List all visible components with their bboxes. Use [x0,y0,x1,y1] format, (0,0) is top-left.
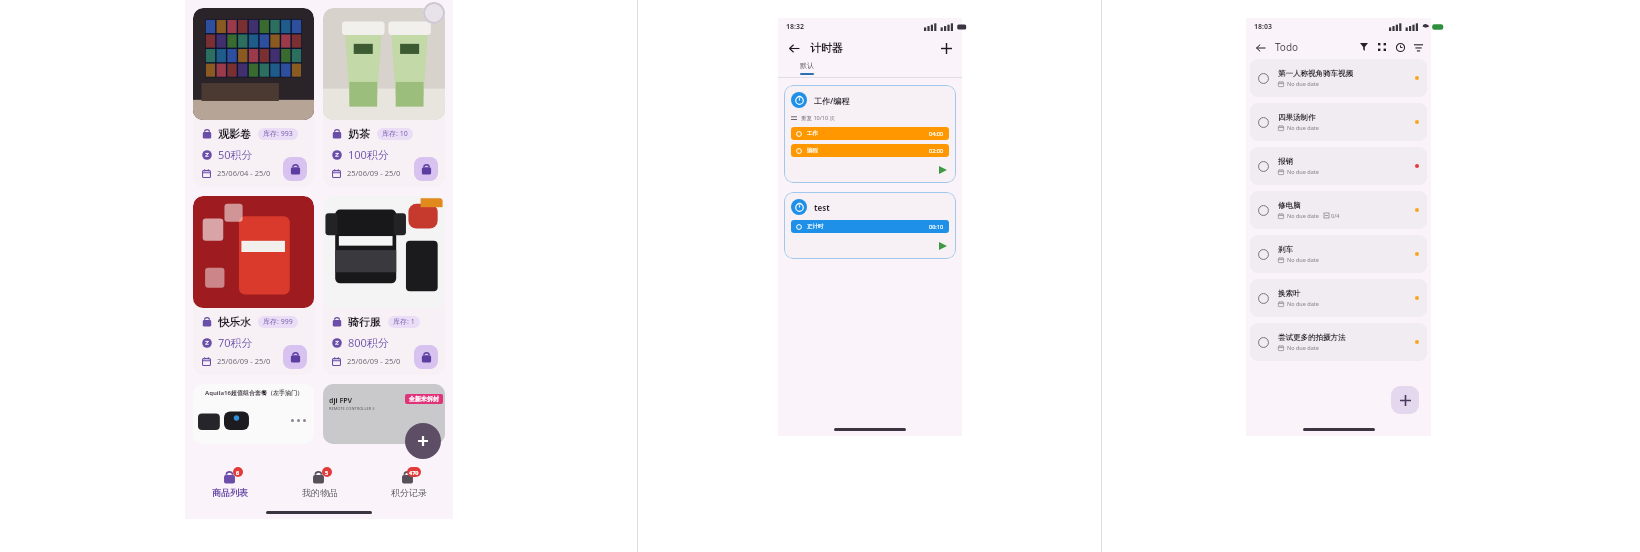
staticText: No due date [1287,168,1319,175]
staticText: 18:03 [1254,22,1272,32]
staticText: No due date [1287,80,1319,87]
staticText: 第一人称视角骑车视频 [1278,69,1353,78]
button[interactable]: 默认 [800,61,814,75]
staticText: 修电脑 [1278,201,1301,210]
button[interactable]: 5 [275,461,364,505]
button[interactable]: 奶茶 [323,8,445,187]
button[interactable]: dji FPV [323,384,445,444]
staticText: No due date [1287,344,1319,351]
button[interactable]: Start [937,164,949,176]
button[interactable]: Add task [1391,386,1419,414]
staticText: 工作 [807,130,818,137]
button[interactable]: 骑行服 [323,196,445,375]
staticText: No due date [1287,300,1319,307]
button[interactable]: View options [1375,40,1389,54]
staticText: 25/06/09 - 25/0 [217,356,271,366]
staticText: 换索叶 [1278,289,1301,298]
staticText: 00:10 [929,223,944,230]
staticText: 100积分 [348,147,389,162]
button[interactable]: Redeem [283,157,307,181]
button[interactable]: Back [1253,40,1268,55]
button[interactable]: 工作 [796,127,944,140]
staticText: 02:00 [929,147,944,154]
staticText: 我的物品 [302,487,338,498]
button[interactable]: Filter [1357,40,1371,54]
staticText: 商品列表 [212,487,248,498]
staticText: 0/4 [1331,212,1340,219]
staticText: 25/06/09 - 25/0 [347,356,401,366]
button[interactable]: Redeem [414,157,438,181]
button[interactable]: Start [937,240,949,252]
button[interactable]: 刹车 [1258,235,1419,273]
button[interactable]: Back [786,40,802,56]
button[interactable]: Add timer [938,40,954,56]
staticText: 25/06/04 - 25/0 [217,168,271,178]
staticText: 库存: 999 [263,317,293,327]
staticText: 800积分 [348,335,389,350]
staticText: No due date [1287,124,1319,131]
staticText: 重复 10/10 次 [801,114,835,122]
staticText: 6 [236,469,240,476]
staticText: REMOTE CONTROLLER 3 [329,406,375,411]
button[interactable]: 四果汤制作 [1258,103,1419,141]
staticText: 50积分 [218,147,253,162]
staticText: 全新未拆封 [409,395,439,403]
staticText: 骑行服 [348,315,381,329]
staticText: 四果汤制作 [1278,113,1316,122]
button[interactable]: 报销 [1258,147,1419,185]
button[interactable]: History [1393,40,1407,54]
staticText: 04:00 [929,130,944,137]
staticText: Todo [1275,40,1299,54]
staticText: 25/06/09 - 25/0 [347,168,401,178]
staticText: dji FPV [329,396,353,406]
staticText: No due date [1287,256,1319,263]
staticText: 正计时 [807,223,824,230]
button[interactable]: 换索叶 [1258,279,1419,317]
button[interactable]: 尝试更多的拍摄方法 [1258,323,1419,361]
staticText: test [814,202,830,213]
button[interactable]: 正计时 [796,220,944,233]
button[interactable]: Redeem [414,345,438,369]
staticText: 18:32 [786,22,804,32]
staticText: 积分记录 [391,487,427,498]
staticText: 5 [325,469,329,476]
staticText: 计时器 [810,41,843,55]
button[interactable]: 观影卷 [193,8,314,187]
button[interactable]: Add [405,423,441,459]
button[interactable]: 工作/编程 [784,85,956,183]
staticText: 尝试更多的拍摄方法 [1278,333,1346,342]
button[interactable]: 修电脑 [1258,191,1419,229]
staticText: 奶茶 [348,127,370,141]
button[interactable]: 编程 [796,144,944,157]
button[interactable]: 快乐水 [193,196,314,375]
button[interactable]: Aquila16超值组合套餐（左手油门） [193,384,314,444]
staticText: 编程 [807,147,818,154]
staticText: No due date [1287,212,1319,219]
button[interactable]: Redeem [283,345,307,369]
staticText: 库存: 993 [263,129,293,139]
staticText: 库存: 1 [393,317,415,327]
button[interactable]: 第一人称视角骑车视频 [1258,59,1419,97]
staticText: 报销 [1278,157,1293,166]
button[interactable]: 6 [185,461,275,505]
staticText: 快乐水 [218,315,251,329]
staticText: 470 [409,469,419,476]
button[interactable]: test [784,192,956,259]
staticText: 默认 [800,61,814,70]
staticText: 库存: 10 [382,129,408,139]
staticText: 工作/编程 [814,95,850,106]
staticText: 70积分 [218,335,253,350]
button[interactable]: 470 [364,461,453,505]
staticText: 观影卷 [218,127,251,141]
staticText: Aquila16超值组合套餐（左手油门） [205,389,303,397]
button[interactable]: Sort [1411,40,1425,54]
button[interactable]: Profile [423,2,445,24]
staticText: 刹车 [1278,245,1293,254]
